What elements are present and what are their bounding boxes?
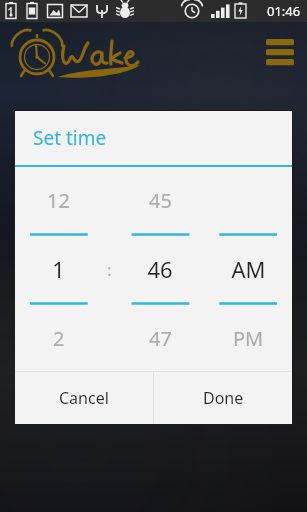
- staticText: 47: [149, 325, 172, 352]
- staticText: Done: [203, 387, 244, 409]
- staticText: Set time: [33, 125, 107, 151]
- staticText: AM: [231, 254, 266, 284]
- staticText: 1: [52, 254, 65, 284]
- button[interactable]: AM: [204, 233, 292, 305]
- staticText: :: [107, 258, 112, 281]
- button[interactable]: 2: [15, 305, 102, 371]
- staticText: 12: [47, 187, 70, 214]
- button[interactable]: PM: [204, 305, 292, 371]
- button[interactable]: 47: [116, 305, 204, 371]
- staticText: 2: [53, 325, 65, 352]
- staticText: 46: [147, 254, 173, 284]
- staticText: 45: [149, 187, 172, 214]
- button[interactable]: 12: [15, 167, 102, 233]
- button[interactable]: Cancel: [15, 372, 153, 424]
- staticText: PM: [233, 325, 264, 352]
- button[interactable]: Open navigation menu: [262, 34, 298, 70]
- staticText: Cancel: [59, 387, 109, 409]
- button[interactable]: Done: [154, 372, 292, 424]
- staticText: 01:46: [267, 2, 301, 20]
- button[interactable]: 46: [116, 233, 204, 305]
- button[interactable]: 45: [116, 167, 204, 233]
- button[interactable]: 1: [15, 233, 102, 305]
